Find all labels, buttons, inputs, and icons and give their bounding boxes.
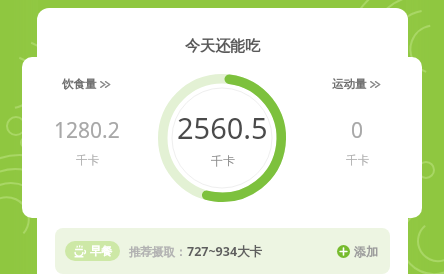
staticText: 727~934大卡 — [187, 243, 263, 260]
staticText: 运动量 — [332, 77, 367, 91]
staticText: 2560.5 — [177, 108, 268, 147]
button[interactable]: 添加 — [335, 244, 380, 259]
staticText: 1280.2 — [54, 116, 120, 145]
other: 添加 — [337, 245, 350, 258]
staticText: 0 — [351, 116, 364, 145]
button[interactable]: 早餐 — [55, 228, 390, 274]
button[interactable]: 早餐 — [65, 241, 120, 261]
staticText: 早餐 — [90, 244, 112, 258]
staticText: 今天还能吃 — [185, 37, 260, 56]
button[interactable]: 饮食量 — [62, 77, 112, 91]
staticText: 千卡 — [76, 153, 99, 167]
staticText: 添加 — [354, 244, 378, 259]
staticText: 饮食量 — [62, 77, 97, 91]
staticText: 推荐摄取： — [129, 245, 187, 259]
button[interactable]: 运动量 — [332, 77, 382, 91]
staticText: 千卡 — [346, 153, 369, 167]
staticText: 千卡 — [211, 153, 235, 168]
